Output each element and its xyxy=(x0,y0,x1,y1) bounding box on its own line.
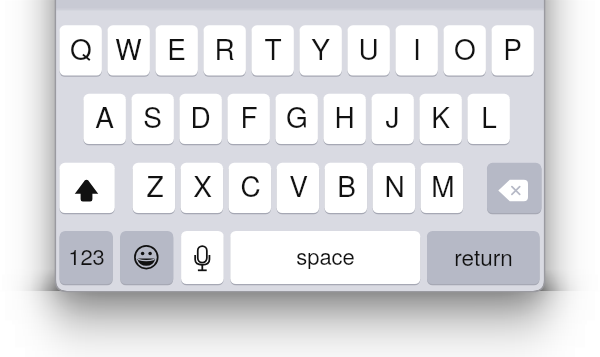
staticText: I xyxy=(413,28,421,68)
button[interactable]: P xyxy=(491,23,534,73)
button[interactable]: R xyxy=(203,23,246,73)
button[interactable]: L xyxy=(467,91,510,141)
button[interactable]: space xyxy=(230,229,420,282)
staticText: M xyxy=(431,165,455,205)
staticText: Z xyxy=(146,165,164,205)
button[interactable]: T xyxy=(251,23,294,73)
staticText: W xyxy=(115,28,142,68)
button[interactable]: O xyxy=(443,23,486,73)
staticText: T xyxy=(264,28,282,68)
staticText: N xyxy=(384,165,405,205)
staticText: F xyxy=(240,96,258,136)
staticText: A xyxy=(95,96,114,136)
button[interactable]: Q xyxy=(59,23,102,73)
staticText: E xyxy=(167,28,186,68)
button[interactable]: G xyxy=(275,91,318,141)
staticText: J xyxy=(385,96,400,136)
button[interactable]: K xyxy=(419,91,462,141)
staticText: space xyxy=(296,240,355,272)
staticText: R xyxy=(214,28,235,68)
button[interactable]: Backspace xyxy=(487,163,541,213)
button[interactable]: W xyxy=(107,23,150,73)
button[interactable]: N xyxy=(373,160,416,210)
button[interactable]: Z xyxy=(133,160,176,210)
button[interactable]: H xyxy=(323,91,366,141)
button[interactable]: V xyxy=(277,160,320,210)
button[interactable]: E xyxy=(155,23,198,73)
button[interactable]: I xyxy=(395,23,438,73)
staticText: L xyxy=(481,96,497,136)
button[interactable]: Dictation xyxy=(181,231,224,284)
button[interactable]: B xyxy=(325,160,368,210)
staticText: S xyxy=(143,96,162,136)
staticText: V xyxy=(289,165,308,205)
staticText: Q xyxy=(70,28,92,68)
staticText: H xyxy=(334,96,355,136)
button[interactable]: J xyxy=(371,91,414,141)
staticText: D xyxy=(190,96,211,136)
staticText: U xyxy=(358,28,379,68)
button[interactable]: M xyxy=(421,160,464,210)
staticText: X xyxy=(193,165,212,205)
button[interactable]: D xyxy=(179,91,222,141)
button[interactable]: X xyxy=(181,160,224,210)
button[interactable]: U xyxy=(347,23,390,73)
staticText: return xyxy=(454,240,513,272)
staticText: O xyxy=(454,28,476,68)
button[interactable]: Y xyxy=(299,23,342,73)
staticText: C xyxy=(240,165,261,205)
staticText: K xyxy=(431,96,450,136)
button[interactable]: Shift xyxy=(59,163,114,213)
button[interactable]: Emoji keyboard xyxy=(120,231,173,284)
staticText: G xyxy=(286,96,308,136)
staticText: P xyxy=(503,28,522,68)
button[interactable]: return xyxy=(427,229,540,282)
button[interactable]: F xyxy=(227,91,270,141)
staticText: Y xyxy=(311,28,330,68)
staticText: B xyxy=(337,165,356,205)
button[interactable]: A xyxy=(83,91,126,141)
button[interactable]: C xyxy=(229,160,272,210)
staticText: 123 xyxy=(68,240,105,272)
button[interactable]: S xyxy=(131,91,174,141)
button[interactable]: 123 xyxy=(60,229,113,282)
